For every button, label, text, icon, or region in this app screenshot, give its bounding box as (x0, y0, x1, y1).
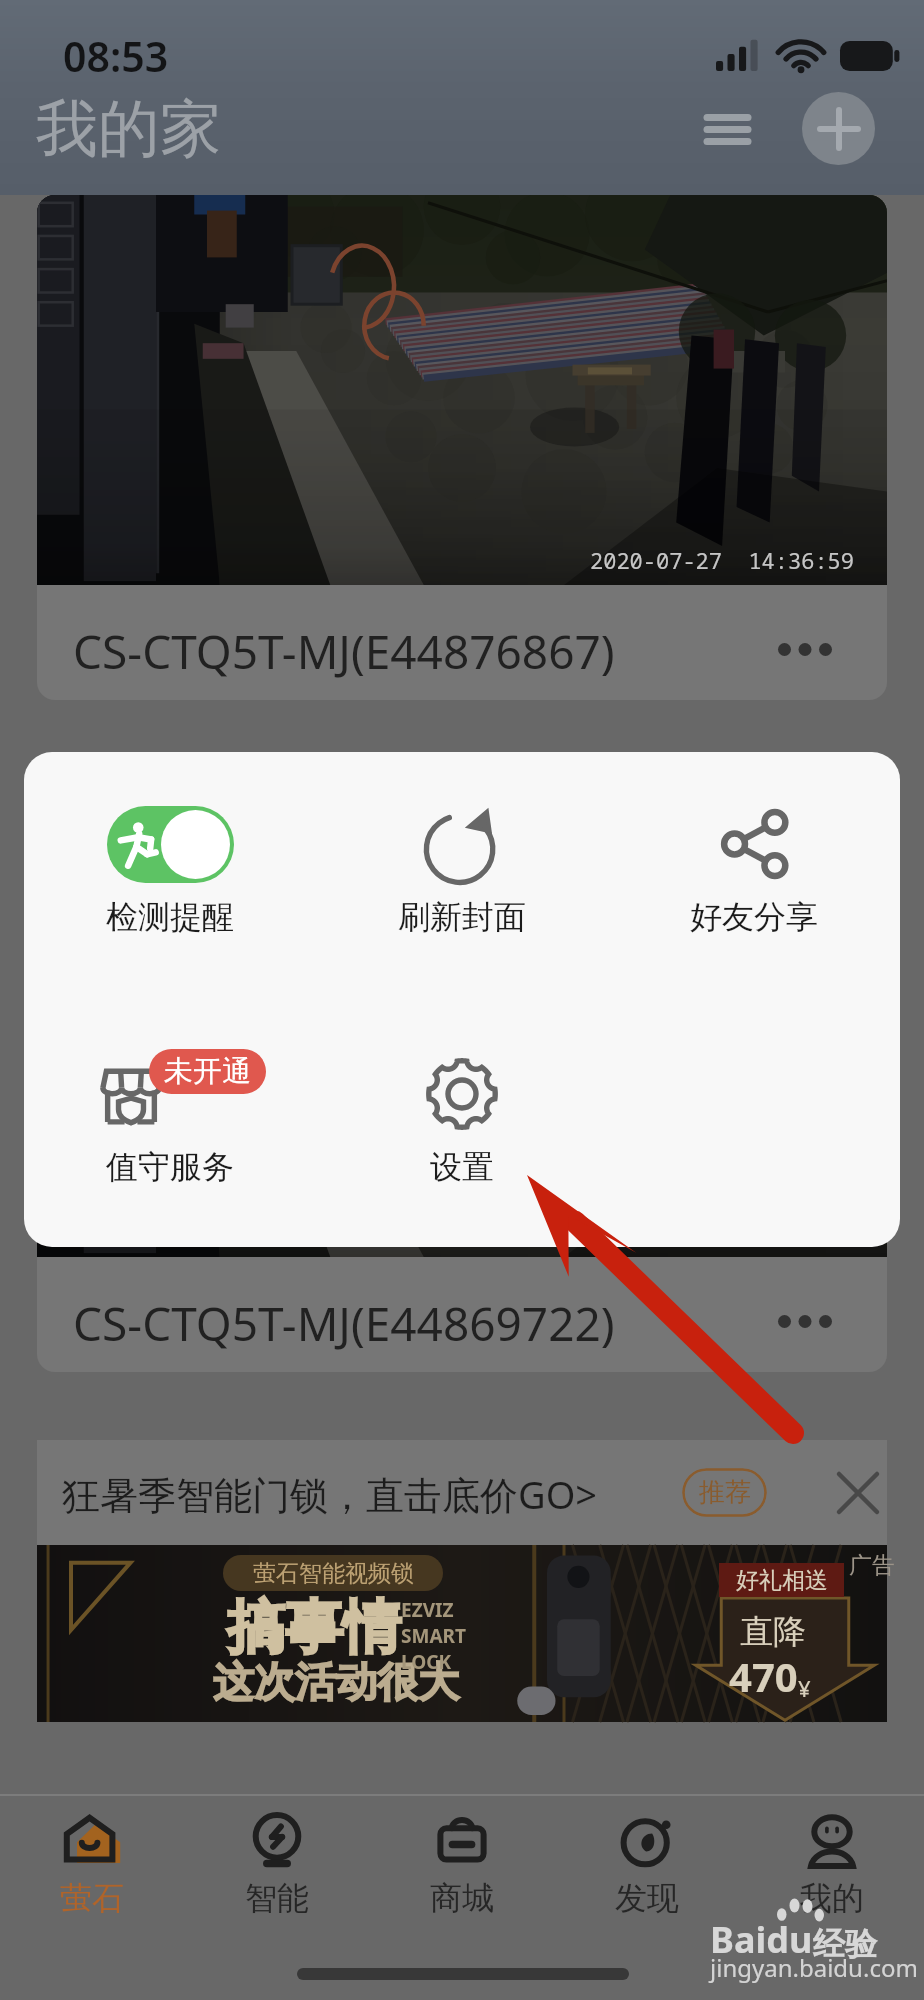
staticText: CS-CTQ5T-MJ(E44869722) (73, 1292, 615, 1355)
button[interactable]: 2020-07-27 14:36:59 (37, 195, 887, 700)
staticText: 值守服务 (106, 1147, 234, 1187)
staticText: 狂暑季智能门锁，直击底价GO> (62, 1468, 598, 1520)
staticText: 我的 (800, 1878, 864, 1918)
button[interactable]: 商城 (369, 1812, 554, 1918)
staticText: 搞事情 (227, 1591, 401, 1664)
button[interactable]: 刷新封面 (316, 799, 608, 937)
staticText: 广告 (849, 1551, 895, 1580)
button[interactable]: Menu (681, 93, 773, 165)
staticText: EZVIZ (401, 1597, 454, 1623)
staticText: 设置 (430, 1147, 494, 1187)
button[interactable]: 狂暑季智能门锁，直击底价GO> (37, 1440, 887, 1545)
staticText: 2020-07-27 14:36:59 (590, 545, 855, 575)
staticText: CS-CTQ5T-MJ(E44876867) (73, 620, 615, 683)
button[interactable]: More options (761, 1277, 849, 1365)
staticText: 未开通 (164, 1053, 251, 1090)
button[interactable]: 智能 (184, 1812, 369, 1918)
button[interactable]: 我的 (739, 1812, 924, 1918)
staticText: SMART (401, 1623, 466, 1649)
button[interactable]: 2020-07-27 14:36:59 (37, 867, 887, 1372)
staticText: 萤石 (60, 1878, 124, 1918)
staticText: 直降 (740, 1611, 806, 1653)
staticText: jingyan.baidu.com (710, 1951, 918, 1984)
staticText: 08:53 (63, 28, 169, 84)
button[interactable]: 好友分享 (608, 799, 900, 937)
staticText: 检测提醒 (106, 897, 234, 937)
button[interactable]: 设置 (316, 1049, 608, 1187)
staticText: 刷新封面 (398, 897, 526, 937)
staticText: LOCK (401, 1649, 452, 1675)
button[interactable]: 检测提醒 (24, 799, 316, 937)
staticText: 发现 (615, 1878, 679, 1918)
staticText: 智能 (245, 1878, 309, 1918)
staticText: 好礼相送 (736, 1566, 828, 1595)
button[interactable]: 萤石 (0, 1812, 184, 1918)
staticText: 这次活动很大 (213, 1657, 459, 1709)
staticText: 经验 (813, 1924, 877, 1964)
button[interactable]: More options (761, 605, 849, 693)
staticText: 萤石智能视频锁 (253, 1559, 414, 1588)
staticText: ¥ (798, 1673, 811, 1703)
button[interactable]: Add device (802, 92, 875, 165)
staticText: 我的家 (36, 90, 222, 168)
staticText: 推荐 (699, 1476, 751, 1509)
staticText: 商城 (430, 1878, 494, 1918)
button[interactable]: Close ad (821, 1456, 895, 1530)
staticText: 470 (729, 1649, 798, 1703)
button[interactable]: 推荐 (682, 1468, 767, 1517)
staticText: 好友分享 (690, 897, 818, 937)
button[interactable]: 未开通 (24, 1049, 316, 1187)
staticText: 2020-07-27 14:36:59 (590, 1217, 855, 1247)
button[interactable]: 发现 (554, 1812, 739, 1918)
staticText: Baidu (710, 1915, 813, 1964)
